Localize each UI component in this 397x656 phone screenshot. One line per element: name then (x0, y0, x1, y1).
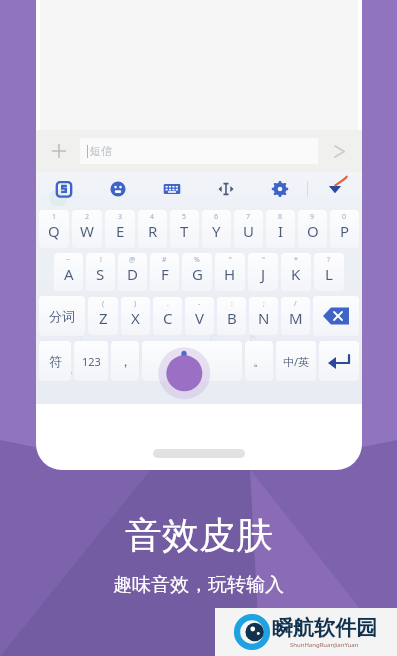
staticText: Q (48, 221, 60, 241)
staticText: % (194, 255, 200, 265)
button[interactable]: / (281, 297, 310, 335)
button[interactable]: " (215, 253, 245, 291)
button[interactable]: Delete (313, 296, 359, 336)
staticText: E (116, 221, 125, 241)
button[interactable]: 2 (72, 210, 102, 248)
staticText: 7 (246, 212, 251, 222)
staticText: 123 (82, 354, 101, 369)
staticText: : (231, 299, 233, 309)
staticText: 3 (118, 212, 123, 222)
button[interactable]: 7 (234, 210, 263, 248)
button[interactable]: Keyboard (145, 172, 199, 206)
button[interactable]: % (182, 253, 212, 291)
button[interactable]: 123 (74, 341, 108, 381)
button[interactable]: 短信 (80, 138, 318, 164)
staticText: D (127, 264, 138, 284)
button[interactable]: Enter (319, 341, 359, 381)
button[interactable]: ? (314, 253, 344, 291)
staticText: 短信 (90, 144, 112, 158)
button[interactable]: 分词 (39, 296, 85, 336)
button[interactable]: ， (111, 341, 139, 381)
staticText: * (294, 255, 298, 265)
button[interactable]: Voice input and space (142, 341, 242, 381)
staticText: ShunHangRuanJianYuan (290, 641, 359, 649)
staticText: 9 (310, 212, 315, 222)
staticText: N (258, 308, 270, 328)
button[interactable]: Hide keyboard (308, 172, 362, 206)
staticText: ( (102, 299, 105, 309)
button[interactable]: Send (326, 138, 352, 164)
button[interactable]: # (150, 253, 179, 291)
button[interactable]: Emoji (91, 172, 145, 206)
button[interactable]: : (217, 297, 246, 335)
button[interactable]: 0 (330, 210, 359, 248)
button[interactable]: @ (118, 253, 147, 291)
staticText: 中/英 (283, 354, 310, 369)
staticText: Z (99, 308, 108, 328)
button[interactable]: 4 (138, 210, 167, 248)
staticText: ! (100, 255, 102, 265)
staticText: 瞬航软件园 (272, 615, 377, 641)
button[interactable]: ( (88, 297, 118, 335)
button[interactable]: 。 (245, 341, 273, 381)
button[interactable]: 8 (266, 210, 295, 248)
staticText: R (148, 221, 158, 241)
staticText: 分词 (49, 308, 75, 324)
staticText: " (229, 255, 232, 265)
staticText: 0 (342, 212, 347, 222)
button[interactable]: ! (86, 253, 115, 291)
button[interactable]: ~ (54, 253, 83, 291)
button[interactable]: * (281, 253, 311, 291)
staticText: J (261, 264, 266, 284)
staticText: # (162, 255, 167, 265)
staticText: / (294, 299, 297, 309)
staticText: ， (119, 353, 132, 369)
staticText: 。 (253, 353, 266, 369)
staticText: A (64, 264, 74, 284)
staticText: B (227, 308, 237, 328)
button[interactable]: 3 (105, 210, 135, 248)
staticText: P (340, 221, 350, 241)
staticText: K (291, 264, 301, 284)
staticText: X (131, 308, 140, 328)
staticText: O (307, 221, 319, 241)
button[interactable]: . (153, 297, 182, 335)
staticText: 2 (85, 212, 90, 222)
button[interactable]: Add (46, 138, 72, 164)
staticText: ~ (66, 255, 71, 265)
staticText: 4 (150, 212, 155, 222)
button[interactable]: Settings (253, 172, 307, 206)
staticText: 符 (49, 353, 62, 369)
button[interactable]: ) (121, 297, 150, 335)
staticText: @ (129, 255, 136, 265)
staticText: U (243, 221, 254, 241)
button[interactable]: " (248, 253, 278, 291)
staticText: S (96, 264, 105, 284)
staticText: 5 (182, 212, 187, 222)
staticText: " (262, 255, 265, 265)
button[interactable]: 9 (298, 210, 327, 248)
staticText: T (180, 221, 189, 241)
staticText: H (224, 264, 236, 284)
staticText: - (198, 299, 201, 309)
staticText: G (192, 264, 203, 284)
staticText: W (80, 221, 94, 241)
staticText: 趣味音效，玩转输入 (113, 573, 284, 597)
button[interactable]: Sogou (36, 172, 91, 206)
button[interactable]: 中/英 (276, 341, 316, 381)
button[interactable]: - (185, 297, 214, 335)
staticText: 6 (214, 212, 219, 222)
staticText: I (278, 221, 284, 241)
staticText: ) (134, 299, 137, 309)
staticText: V (195, 308, 205, 328)
button[interactable]: Move cursor (199, 172, 253, 206)
button[interactable]: 符 (39, 341, 71, 381)
button[interactable]: 6 (202, 210, 231, 248)
staticText: ; (263, 299, 265, 309)
button[interactable]: 1 (39, 210, 69, 248)
button[interactable]: ; (249, 297, 278, 335)
staticText: M (289, 308, 303, 328)
staticText: ? (327, 255, 331, 265)
staticText: . (167, 299, 169, 309)
button[interactable]: 5 (170, 210, 199, 248)
